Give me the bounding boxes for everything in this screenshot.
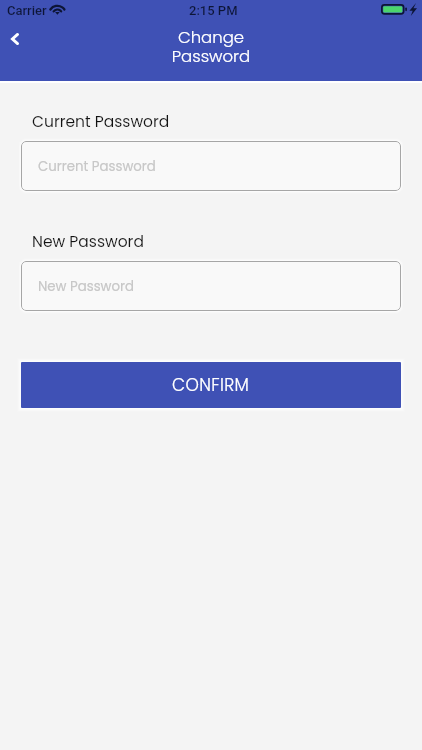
staticText: CONFIRM [172,373,250,397]
staticText: Current Password [32,111,170,133]
staticText: Current Password [38,157,156,176]
staticText: 2:15 PM [189,3,238,18]
staticText: New Password [32,231,144,253]
staticText: Change Password [0,26,422,68]
button[interactable]: Back [0,22,34,56]
staticText: Carrier [7,3,47,18]
staticText: New Password [38,277,134,296]
button[interactable]: New Password [21,261,401,311]
button[interactable]: CONFIRM [21,362,401,408]
button[interactable]: Current Password [21,141,401,191]
